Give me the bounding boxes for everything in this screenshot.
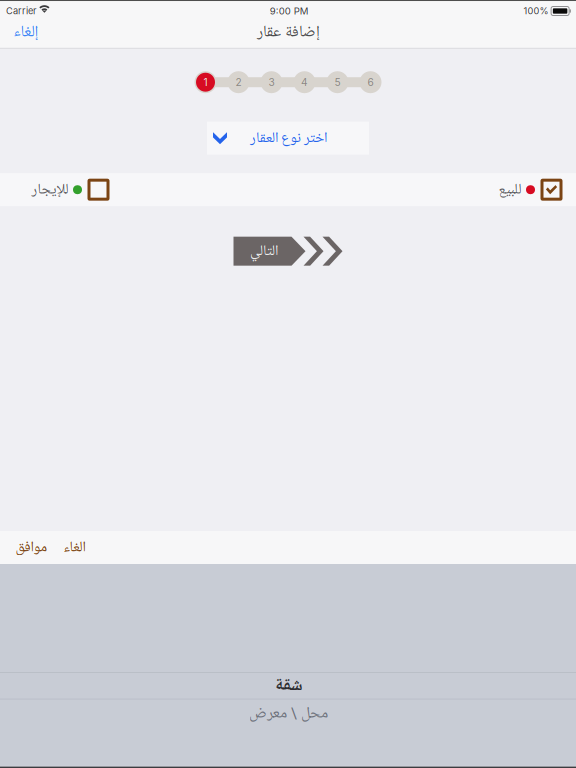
staticText: Carrier [6, 5, 36, 16]
staticText: إضافة عقار [256, 21, 319, 43]
button[interactable]: موافق [7, 531, 55, 564]
button[interactable]: للبيع [498, 173, 576, 206]
button[interactable]: للإيجار [0, 173, 108, 206]
staticText: إلغاء [13, 21, 38, 43]
staticText: 5 [334, 76, 340, 88]
staticText: شقة [274, 674, 302, 697]
staticText: الغاء [63, 537, 85, 557]
staticText: التالي [249, 241, 277, 261]
staticText: 1 [203, 76, 207, 88]
staticText: 6 [367, 76, 373, 88]
staticText: موافق [15, 537, 47, 557]
staticText: محل \ معرض [248, 702, 327, 724]
button[interactable]: اختر نوع العقار [207, 122, 369, 155]
staticText: 4 [301, 76, 308, 88]
staticText: 100% [524, 5, 549, 16]
staticText: 2 [235, 76, 241, 88]
button[interactable]: التالي [232, 237, 343, 266]
staticText: 3 [268, 76, 274, 88]
staticText: للبيع [498, 180, 521, 200]
button[interactable]: الغاء [55, 531, 93, 564]
staticText: اختر نوع العقار [249, 128, 326, 148]
button[interactable]: إلغاء [0, 20, 51, 47]
staticText: 9:00 PM [270, 5, 309, 17]
staticText: للإيجار [31, 180, 68, 200]
